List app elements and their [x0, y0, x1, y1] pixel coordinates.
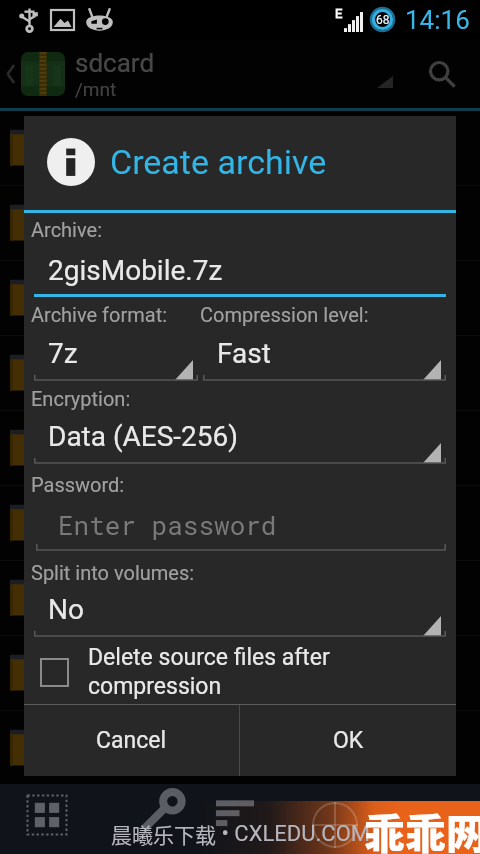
button[interactable]: Select items — [26, 794, 68, 836]
button[interactable]: Data (AES-256) — [34, 420, 446, 464]
staticText: • CXLEDU.COM — [216, 821, 370, 847]
button[interactable] — [10, 186, 480, 260]
staticText: Enter password — [58, 508, 277, 542]
staticText: /mnt — [75, 78, 117, 100]
staticText: Password: — [31, 473, 125, 496]
button[interactable] — [10, 636, 480, 710]
button[interactable] — [10, 261, 480, 335]
staticText: 7z — [48, 337, 78, 370]
button[interactable] — [10, 111, 480, 185]
staticText: 68 — [376, 13, 390, 27]
staticText: Encryption: — [31, 387, 131, 410]
button[interactable]: Sort — [216, 795, 254, 833]
button[interactable]: No — [34, 593, 446, 637]
staticText: Fast — [217, 337, 271, 370]
button[interactable] — [10, 711, 480, 784]
staticText: No — [48, 593, 84, 626]
button[interactable] — [10, 486, 480, 560]
staticText: Archive: — [31, 218, 102, 241]
staticText: E — [335, 6, 343, 21]
staticText: Delete source files after compression — [88, 644, 442, 700]
staticText: 乖乖网 — [364, 801, 480, 854]
button[interactable]: 7z — [34, 337, 198, 381]
staticText: OK — [333, 727, 364, 754]
button[interactable] — [10, 561, 480, 635]
staticText: sdcard — [75, 48, 155, 78]
button[interactable]: Tools — [143, 792, 185, 834]
staticText: 晨曦乐下载 — [111, 819, 216, 849]
button[interactable]: Delete source files after compression — [41, 643, 442, 701]
staticText: Compression level: — [200, 303, 369, 326]
staticText: Split into volumes: — [31, 561, 195, 584]
staticText: Archive format: — [31, 303, 168, 326]
staticText: Cancel — [96, 727, 167, 754]
button[interactable] — [10, 336, 480, 410]
button[interactable]: Cancel — [24, 705, 239, 776]
staticText: Data (AES-256) — [48, 420, 239, 453]
button[interactable] — [10, 411, 480, 485]
button[interactable]: Search — [422, 54, 462, 94]
staticText: 2gisMobile.7z — [48, 254, 223, 287]
staticText: Create archive — [110, 142, 327, 182]
staticText: 14:16 — [405, 5, 470, 35]
button[interactable]: OK — [240, 705, 456, 776]
button[interactable]: Fast — [203, 337, 446, 381]
